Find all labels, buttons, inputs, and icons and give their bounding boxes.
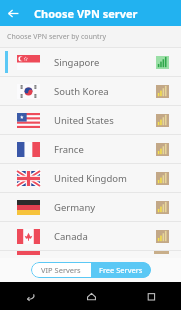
staticText: Germany [54, 201, 96, 214]
staticText: Free Servers [99, 265, 143, 275]
button[interactable]: United States [0, 106, 181, 134]
staticText: France [54, 143, 84, 156]
button[interactable]: Canada [0, 222, 181, 250]
button[interactable]: South Korea [0, 77, 181, 105]
staticText: United Kingdom [54, 172, 127, 185]
staticText: United States [54, 114, 114, 127]
staticText: Choose VPN server by country [7, 32, 107, 42]
button[interactable]: Free Servers [91, 262, 151, 278]
button[interactable]: Home [61, 282, 121, 310]
button[interactable]: United Kingdom [0, 164, 181, 192]
button[interactable]: Germany [0, 193, 181, 221]
staticText: Canada [54, 230, 88, 243]
button[interactable]: Back [0, 0, 26, 26]
staticText: South Korea [54, 85, 109, 98]
button[interactable]: Recents [121, 282, 181, 310]
staticText: Choose VPN server [34, 6, 138, 21]
button[interactable]: VIP Servers [31, 262, 91, 278]
button[interactable]: France [0, 135, 181, 163]
staticText: VIP Servers [41, 265, 81, 275]
button[interactable]: Back [0, 282, 61, 310]
button[interactable]: Singapore [0, 48, 181, 76]
staticText: Singapore [54, 56, 100, 69]
